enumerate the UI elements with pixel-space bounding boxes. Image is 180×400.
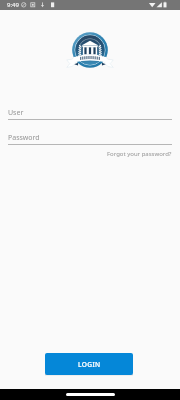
staticText: Password [8, 133, 40, 143]
staticText: 9:49 [7, 1, 19, 9]
button[interactable]: Forgot your password? [107, 150, 172, 158]
staticText: Forgot your password? [107, 150, 172, 158]
staticText: LOGIN [78, 360, 101, 369]
other: Home [66, 393, 115, 396]
staticText: User [8, 108, 24, 118]
button[interactable]: LOGIN [45, 353, 133, 375]
